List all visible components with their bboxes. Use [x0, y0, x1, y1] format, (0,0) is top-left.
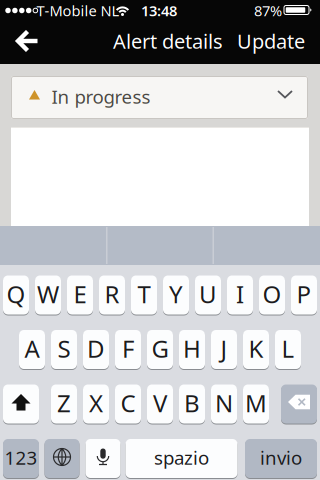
staticText: 13:48	[141, 1, 177, 20]
staticText: J	[220, 333, 227, 364]
staticText: Alert details	[113, 28, 223, 54]
staticText: R	[104, 278, 119, 310]
staticText: invio	[260, 445, 302, 470]
button[interactable]: J	[211, 329, 237, 369]
staticText: T	[137, 278, 150, 310]
button[interactable]: T	[131, 275, 157, 315]
button[interactable]: L	[275, 329, 301, 369]
button[interactable]: In progress	[11, 76, 308, 119]
staticText: In progress	[51, 84, 150, 109]
button[interactable]: A	[19, 329, 45, 369]
button[interactable]: O	[259, 275, 285, 315]
staticText: Q	[6, 278, 25, 310]
staticText: C	[120, 387, 135, 419]
staticText: Update	[237, 28, 305, 54]
staticText: H	[183, 333, 201, 364]
button[interactable]	[3, 384, 39, 424]
staticText: N	[215, 387, 233, 419]
button[interactable]: 123	[3, 438, 39, 478]
button[interactable]: N	[211, 384, 237, 424]
staticText: F	[122, 333, 134, 364]
button[interactable]: S	[51, 329, 77, 369]
button[interactable]: K	[243, 329, 269, 369]
button[interactable]: spazio	[125, 438, 237, 478]
staticText: U	[199, 278, 217, 310]
staticText: 87%	[254, 1, 282, 20]
button[interactable]: G	[147, 329, 173, 369]
staticText: G	[151, 333, 168, 364]
staticText: M	[245, 387, 267, 419]
button[interactable]: Y	[163, 275, 189, 315]
button[interactable]: E	[67, 275, 93, 315]
staticText: spazio	[154, 445, 209, 470]
staticText: I	[236, 278, 244, 310]
button[interactable]: F	[115, 329, 141, 369]
button[interactable]: X	[83, 384, 109, 424]
button[interactable]	[85, 438, 120, 478]
button[interactable]: D	[83, 329, 109, 369]
staticText: L	[281, 333, 294, 364]
button[interactable]: Q	[3, 275, 29, 315]
button[interactable]: H	[179, 329, 205, 369]
staticText: B	[184, 387, 200, 419]
staticText: P	[296, 278, 311, 310]
staticText: O	[262, 278, 281, 310]
staticText: Z	[57, 387, 71, 419]
staticText: V	[153, 387, 167, 419]
staticText: S	[57, 333, 70, 364]
staticText: D	[87, 333, 105, 364]
button[interactable]	[6, 23, 50, 59]
button[interactable]: V	[147, 384, 173, 424]
button[interactable]: I	[227, 275, 253, 315]
staticText: E	[73, 278, 86, 310]
button[interactable]: M	[243, 384, 269, 424]
staticText: X	[89, 387, 103, 419]
button[interactable]: Z	[51, 384, 77, 424]
staticText: Y	[169, 278, 183, 310]
button[interactable]: P	[291, 275, 317, 315]
button[interactable]: R	[99, 275, 125, 315]
button[interactable]: Update	[226, 23, 316, 59]
button[interactable]: B	[179, 384, 205, 424]
button[interactable]: U	[195, 275, 221, 315]
staticText: K	[248, 333, 263, 364]
button[interactable]: W	[35, 275, 61, 315]
staticText: W	[37, 278, 59, 310]
button[interactable]	[281, 384, 317, 424]
button[interactable]: invio	[245, 438, 317, 478]
staticText: A	[24, 333, 39, 364]
button[interactable]	[44, 438, 79, 478]
staticText: 123	[4, 445, 37, 470]
staticText: T-Mobile NL	[36, 1, 119, 20]
button[interactable]: C	[115, 384, 141, 424]
